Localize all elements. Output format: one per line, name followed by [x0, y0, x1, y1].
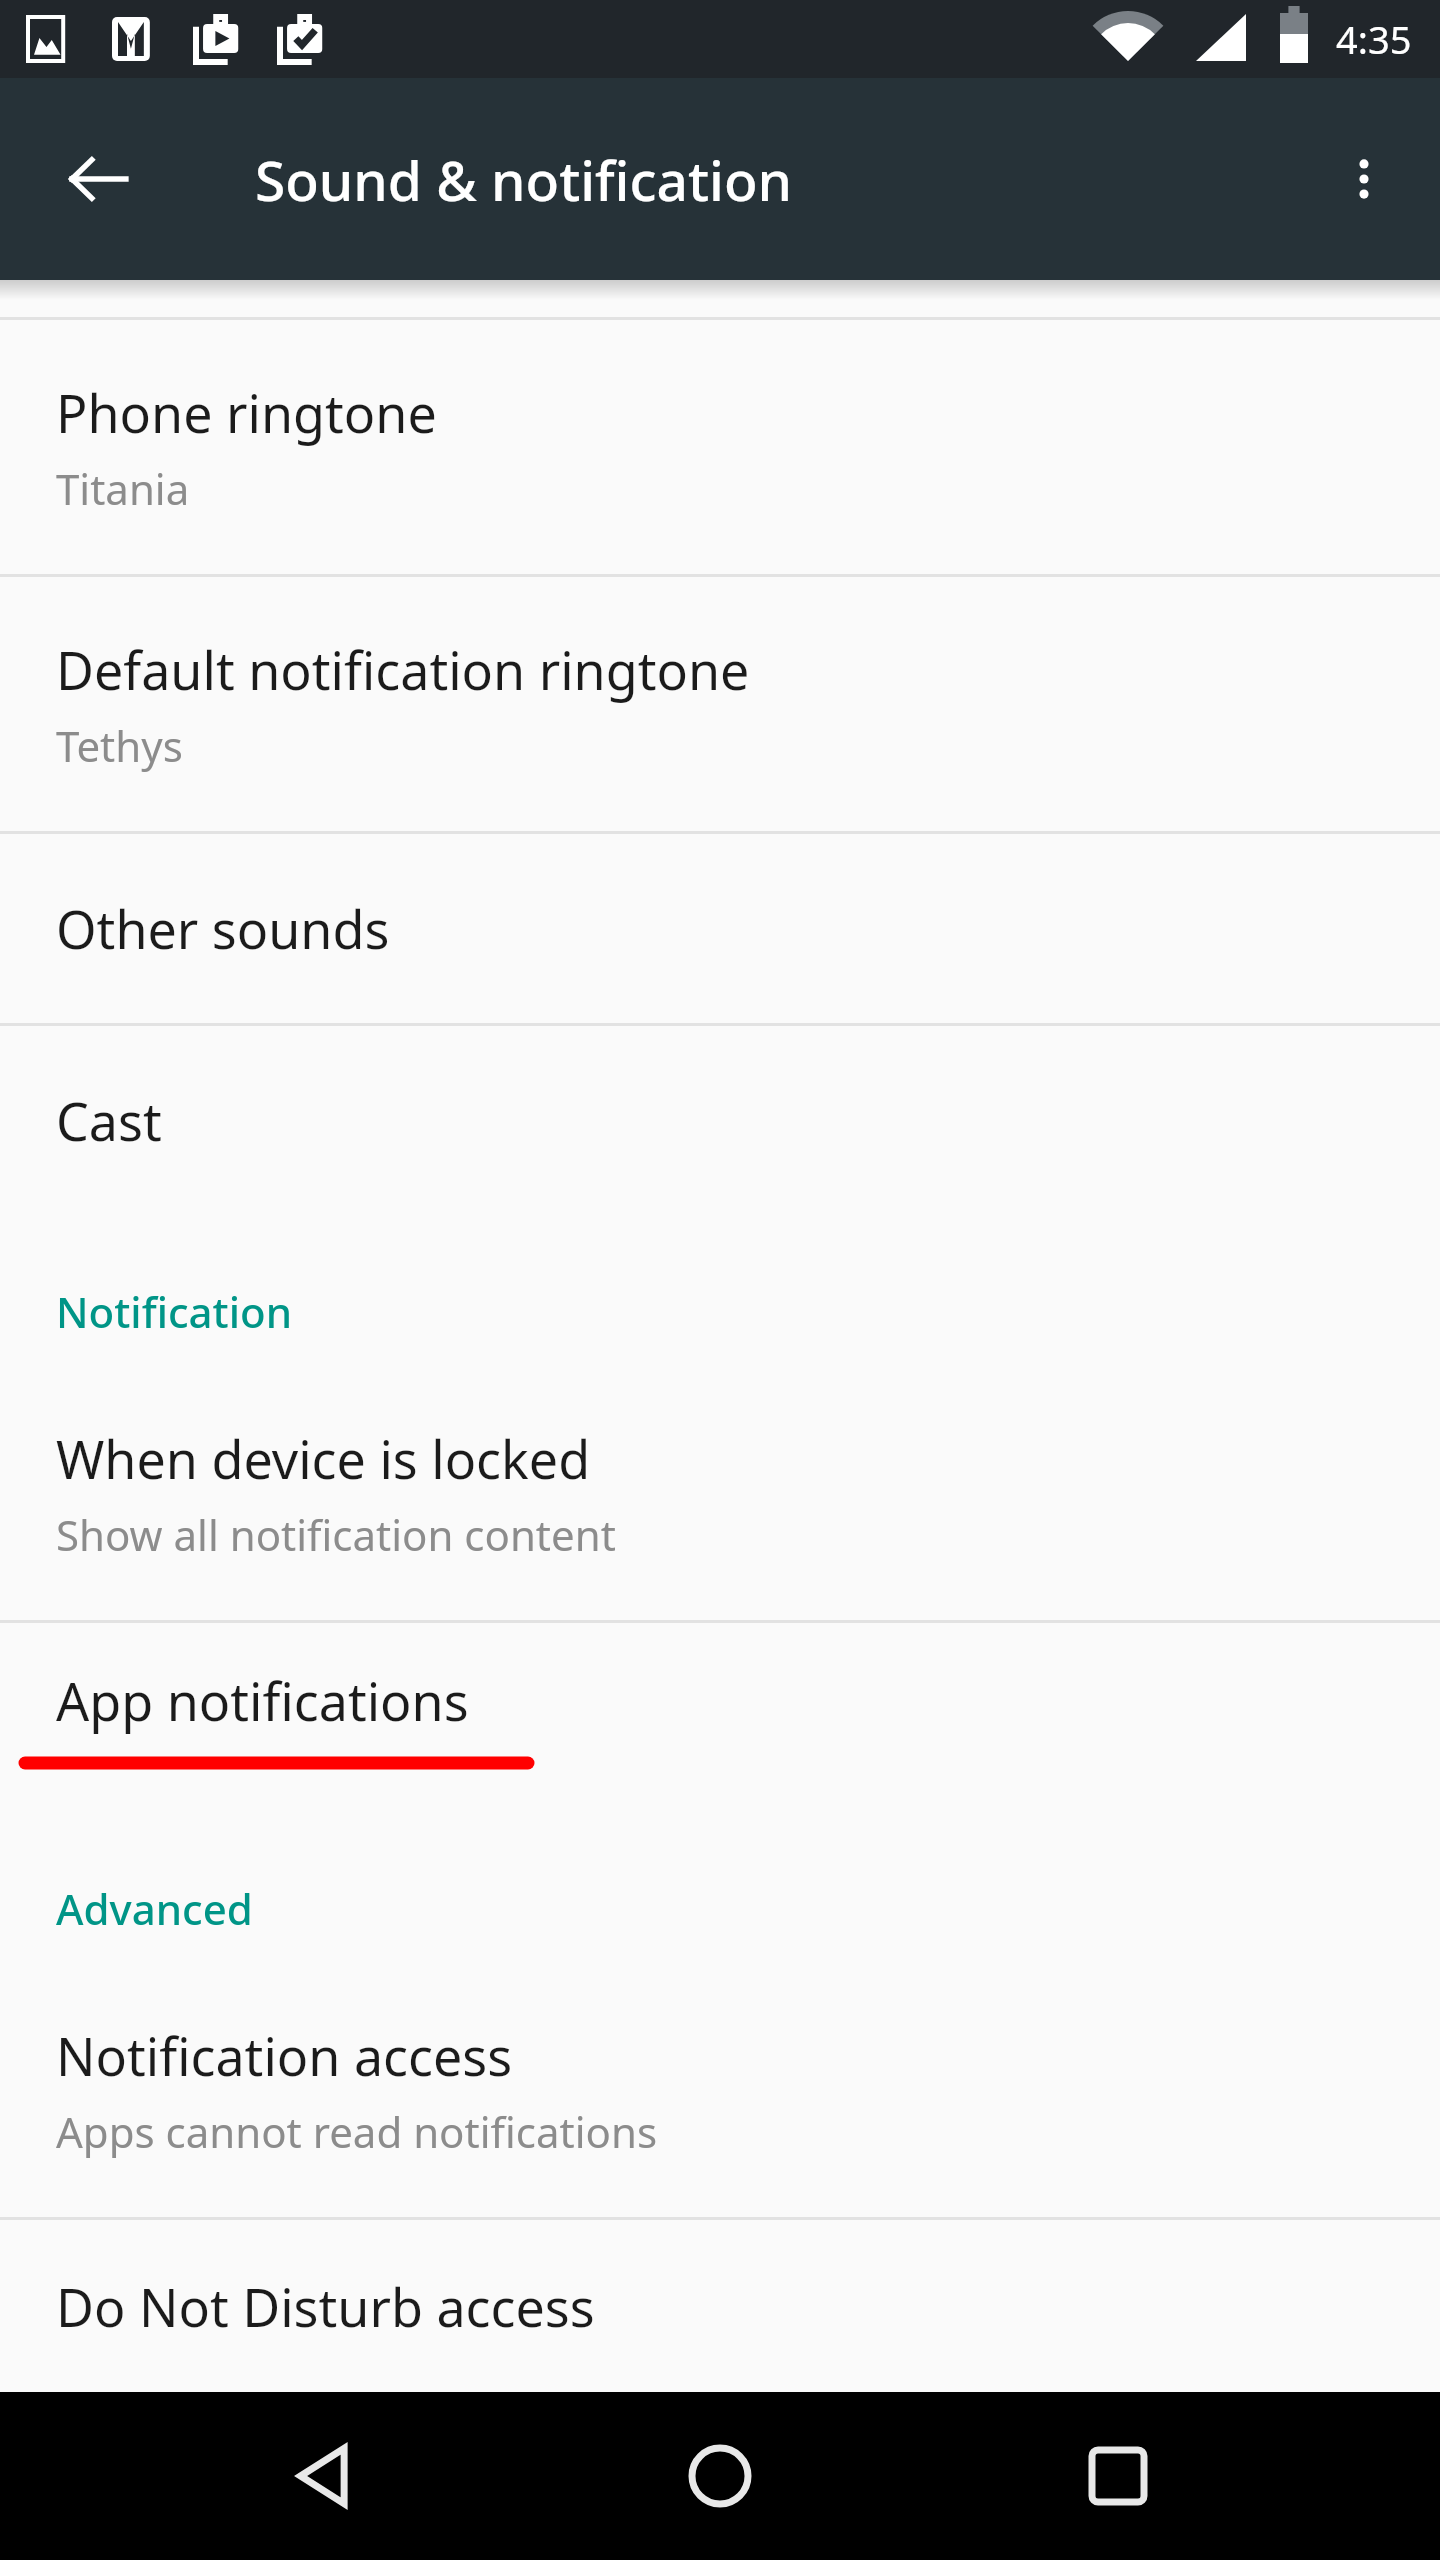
staticText: Sound & notification	[255, 142, 792, 217]
staticText: 4:35	[1336, 13, 1412, 65]
staticText: Do Not Disturb access	[56, 2271, 595, 2342]
staticText: Show all notification content	[56, 1506, 616, 1563]
button[interactable]: Notification access	[0, 1963, 1440, 2217]
button[interactable]: Phone ringtone	[0, 320, 1440, 574]
staticText: Notification access	[56, 2020, 513, 2091]
button[interactable]: Other sounds	[0, 834, 1440, 1023]
button[interactable]: Do Not Disturb access	[0, 2220, 1440, 2392]
staticText: When device is locked	[56, 1423, 591, 1494]
staticText: Tethys	[56, 717, 183, 774]
button[interactable]: Cast	[0, 1026, 1440, 1215]
staticText: Default notification ringtone	[56, 634, 750, 705]
staticText: Advanced	[56, 1880, 253, 1937]
staticText: Apps cannot read notifications	[56, 2103, 658, 2160]
button[interactable]: Default notification ringtone	[0, 577, 1440, 831]
button[interactable]: When device is locked	[0, 1366, 1440, 1620]
staticText: App notifications	[56, 1665, 469, 1736]
staticText: Cast	[56, 1085, 162, 1156]
button[interactable]: Back	[248, 2401, 398, 2551]
button[interactable]: App notifications	[0, 1623, 1440, 1812]
button[interactable]: Home	[645, 2401, 795, 2551]
staticText: Notification	[56, 1283, 293, 1340]
staticText: Other sounds	[56, 893, 390, 964]
button[interactable]: Recent apps	[1043, 2401, 1193, 2551]
button[interactable]: More options	[1312, 127, 1416, 231]
staticText: Titania	[56, 460, 190, 517]
staticText: Phone ringtone	[56, 377, 437, 448]
button[interactable]: Navigate up	[46, 127, 150, 231]
